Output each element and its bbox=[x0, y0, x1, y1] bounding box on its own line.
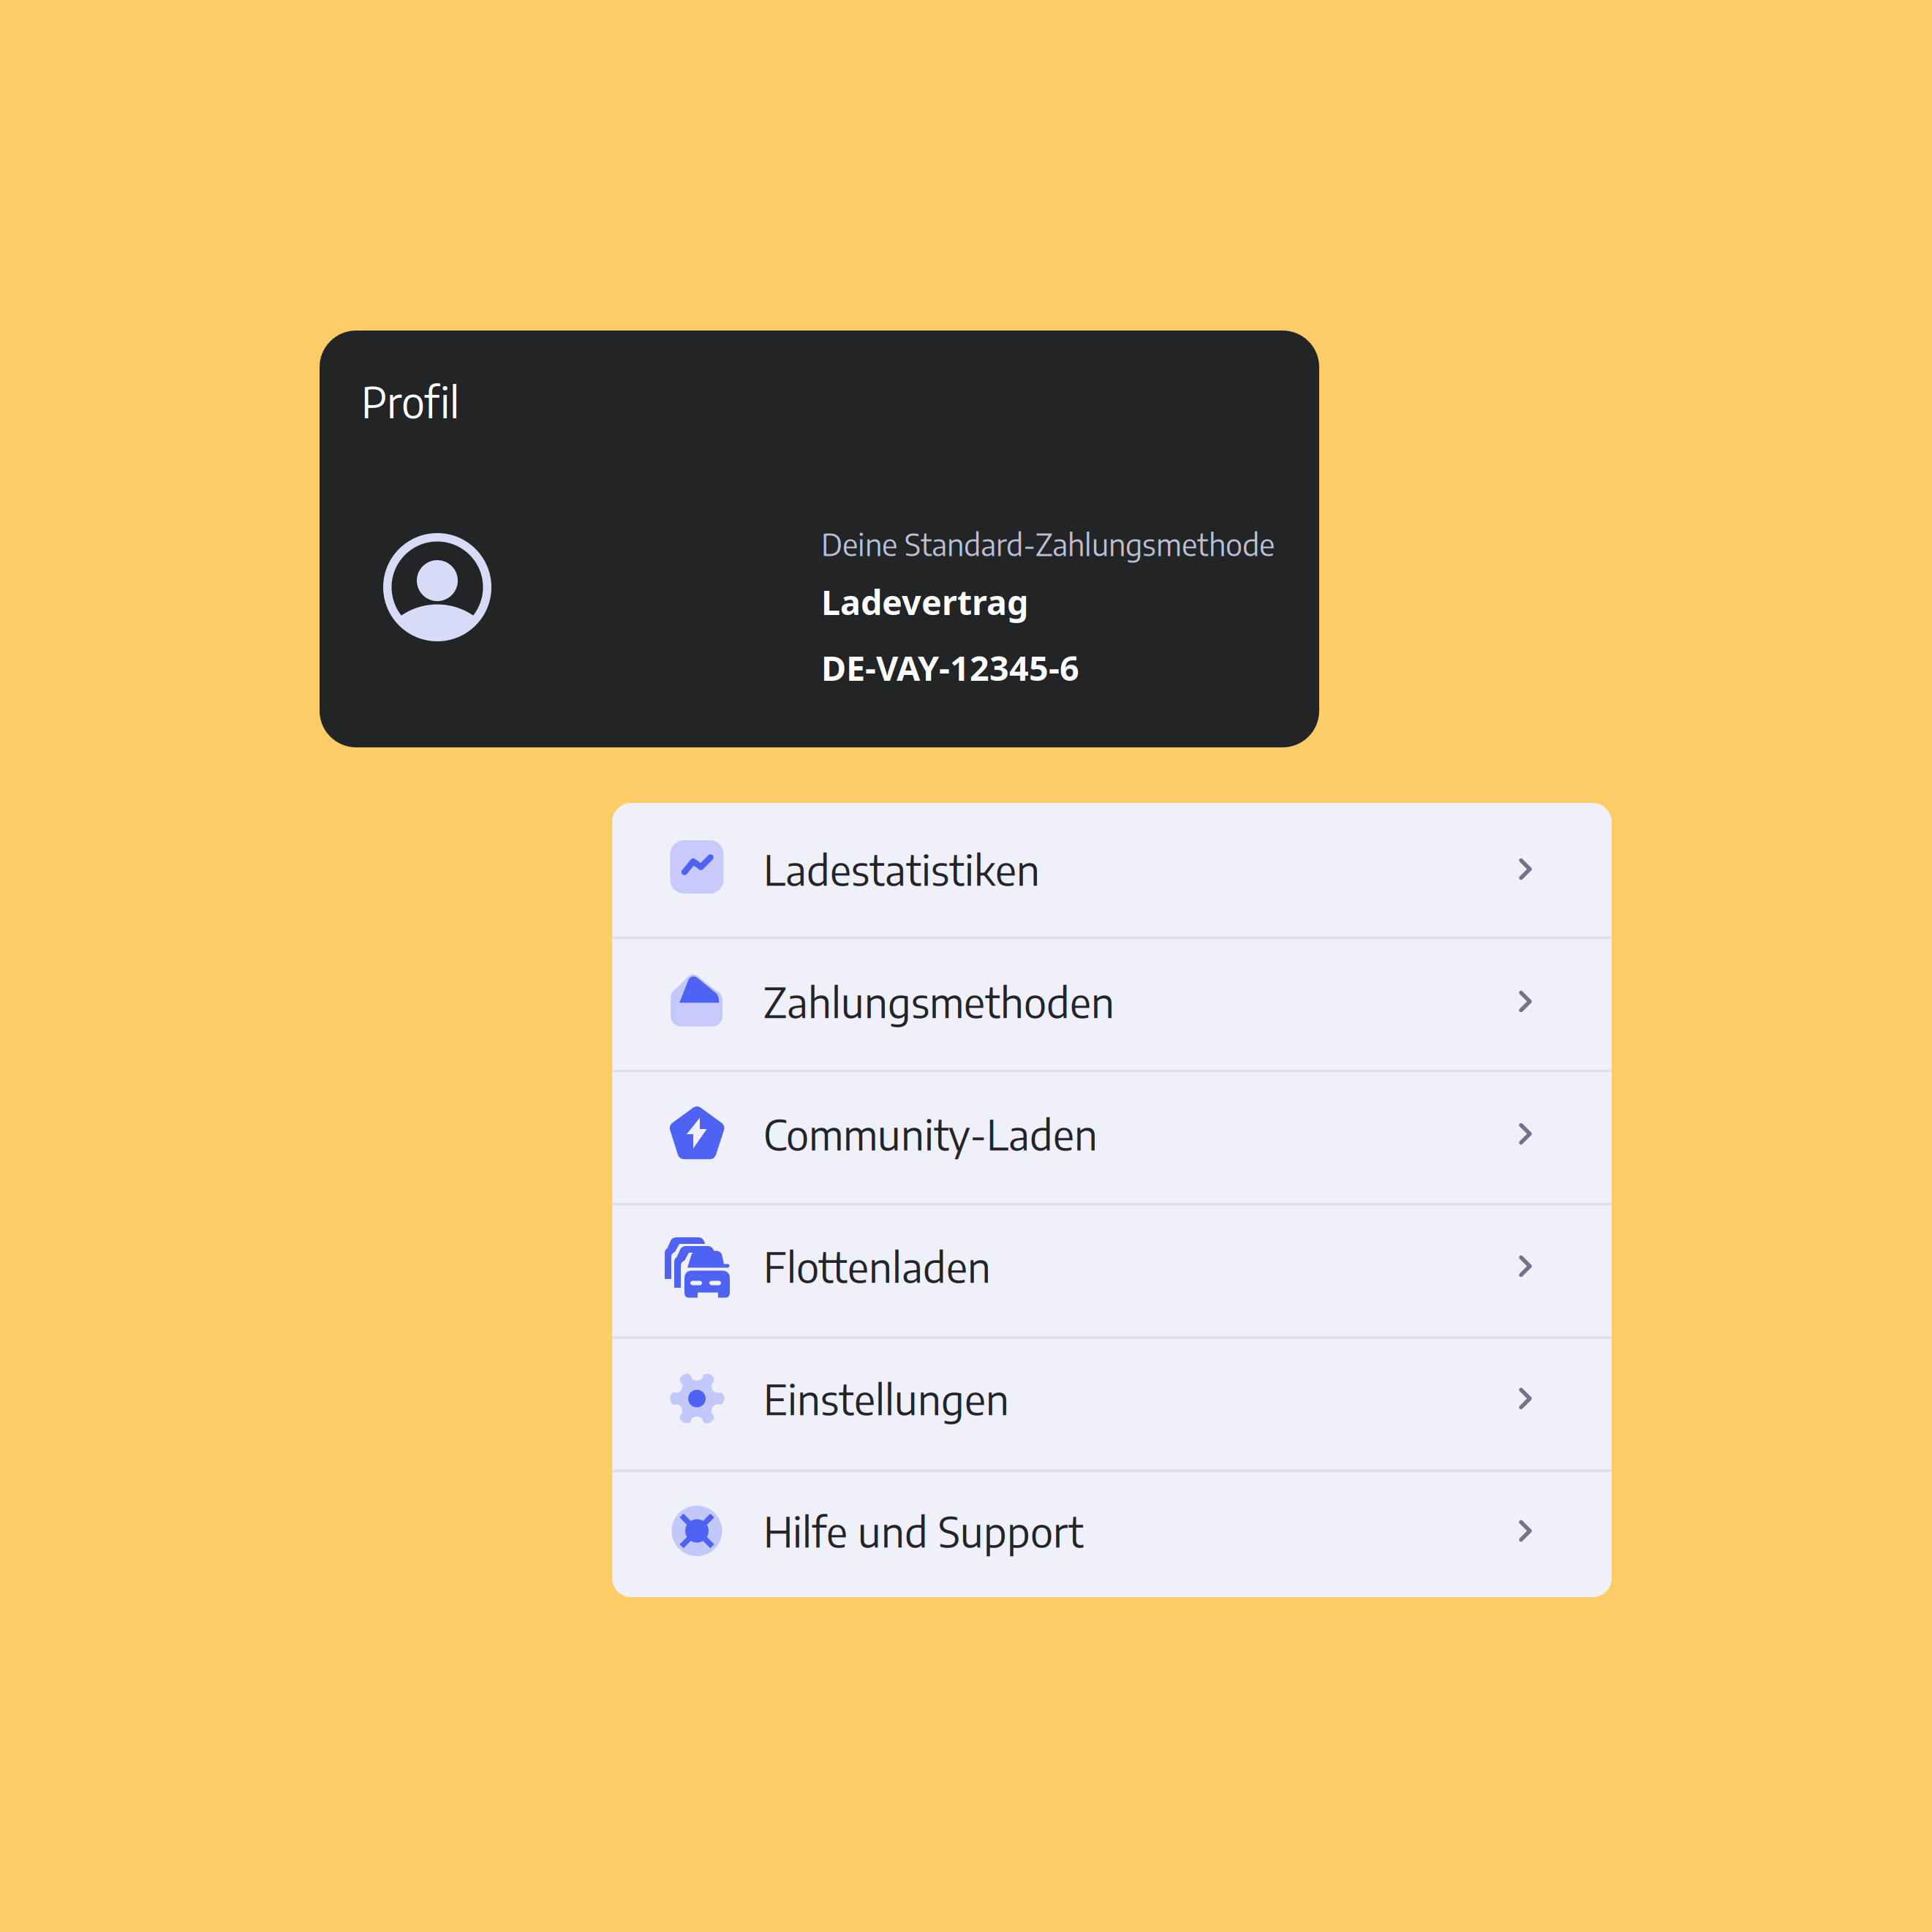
button[interactable]: Ladestatistiken bbox=[612, 803, 1612, 935]
staticText: Zahlungsmethoden bbox=[763, 976, 1114, 1027]
staticText: Deine Standard-Zahlungsmethode bbox=[821, 525, 1275, 563]
staticText: Hilfe und Support bbox=[763, 1505, 1084, 1556]
staticText: Ladestatistiken bbox=[763, 844, 1040, 895]
staticText: Einstellungen bbox=[763, 1373, 1009, 1424]
button[interactable]: Community-Laden bbox=[612, 1068, 1612, 1200]
staticText: Flottenladen bbox=[763, 1241, 991, 1292]
button[interactable]: Zahlungsmethoden bbox=[612, 935, 1612, 1068]
staticText: Profil bbox=[361, 375, 459, 428]
button[interactable]: Hilfe und Support bbox=[612, 1465, 1612, 1597]
staticText: Community-Laden bbox=[763, 1108, 1098, 1159]
button[interactable]: Flottenladen bbox=[612, 1200, 1612, 1332]
button[interactable]: Einstellungen bbox=[612, 1332, 1612, 1465]
staticText: Ladevertrag bbox=[821, 578, 1028, 625]
staticText: DE-VAY-12345-6 bbox=[821, 644, 1079, 691]
